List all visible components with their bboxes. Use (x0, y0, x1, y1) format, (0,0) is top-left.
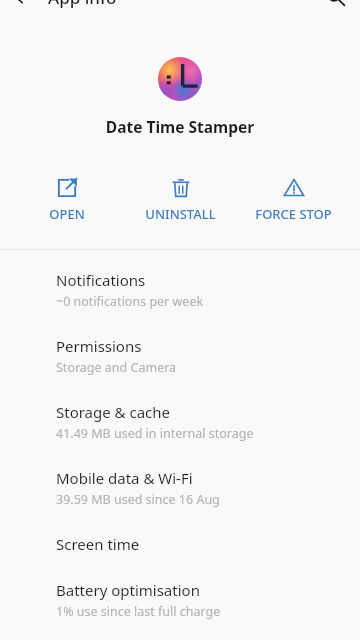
staticText: FORCE STOP (255, 205, 332, 223)
staticText: ~0 notifications per week (56, 293, 204, 310)
staticText: Screen time (56, 534, 140, 554)
button[interactable]: UNINSTALL (124, 171, 237, 229)
staticText: Date Time Stamper (0, 116, 360, 137)
button[interactable]: Storage & cache (0, 389, 360, 455)
button[interactable]: OPEN (10, 171, 124, 229)
staticText: 41.49 MB used in internal storage (56, 425, 254, 442)
staticText: App info (48, 0, 117, 8)
staticText: 1% use since last full charge (56, 603, 221, 620)
staticText: UNINSTALL (145, 205, 216, 223)
button[interactable]: Battery optimisation (0, 567, 360, 633)
staticText: OPEN (49, 205, 85, 223)
button[interactable]: FORCE STOP (237, 171, 350, 229)
staticText: Mobile data & Wi-Fi (56, 468, 193, 488)
staticText: Storage & cache (56, 402, 171, 422)
button[interactable]: Back (0, 0, 48, 8)
staticText: Permissions (56, 336, 142, 356)
button[interactable]: Screen time (0, 521, 360, 567)
staticText: Battery optimisation (56, 580, 200, 600)
staticText: 39.59 MB used since 16 Aug (56, 491, 220, 508)
button[interactable]: Notifications (0, 257, 360, 323)
button[interactable]: Mobile data & Wi-Fi (0, 455, 360, 521)
staticText: Notifications (56, 270, 146, 290)
button[interactable]: Permissions (0, 323, 360, 389)
button[interactable]: Search (312, 0, 360, 8)
staticText: Storage and Camera (56, 359, 177, 376)
